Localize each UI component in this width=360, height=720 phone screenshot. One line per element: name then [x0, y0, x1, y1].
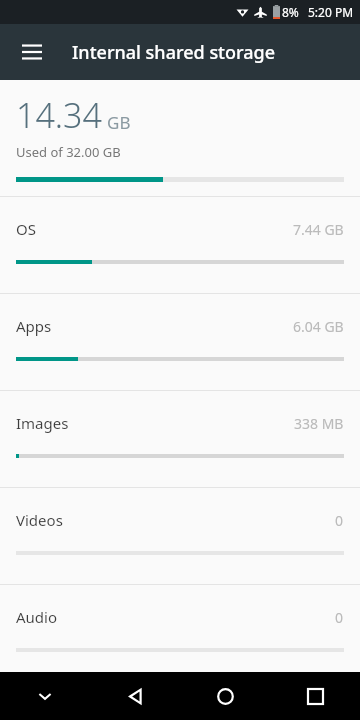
- staticText: 14.34: [16, 92, 102, 138]
- staticText: GB: [107, 111, 131, 134]
- staticText: Used of 32.00 GB: [16, 143, 121, 161]
- button[interactable]: Apps: [0, 293, 360, 390]
- button[interactable]: OS: [0, 196, 360, 293]
- button[interactable]: Other: [0, 681, 360, 720]
- button[interactable]: Home: [180, 672, 270, 720]
- staticText: 428 KB: [298, 704, 344, 720]
- staticText: 8%: [282, 4, 299, 20]
- staticText: Apps: [16, 316, 52, 336]
- staticText: Internal shared storage: [72, 40, 276, 65]
- staticText: Audio: [16, 607, 58, 627]
- button[interactable]: 14.34: [0, 92, 360, 182]
- button[interactable]: Videos: [0, 487, 360, 584]
- staticText: 6.04 GB: [293, 317, 344, 336]
- button[interactable]: Back: [90, 672, 180, 720]
- staticText: Images: [16, 413, 69, 433]
- staticText: 7.44 GB: [293, 220, 344, 239]
- staticText: 338 MB: [294, 414, 344, 433]
- staticText: 0: [335, 608, 344, 627]
- button[interactable]: Recent apps: [270, 672, 360, 720]
- staticText: 0: [335, 511, 344, 530]
- button[interactable]: Hide keyboard: [0, 672, 90, 720]
- button[interactable]: Audio: [0, 584, 360, 681]
- staticText: 5:20 PM: [308, 4, 354, 20]
- staticText: OS: [16, 219, 36, 239]
- button[interactable]: Open navigation drawer: [12, 32, 52, 72]
- button[interactable]: Images: [0, 390, 360, 487]
- staticText: Videos: [16, 510, 63, 530]
